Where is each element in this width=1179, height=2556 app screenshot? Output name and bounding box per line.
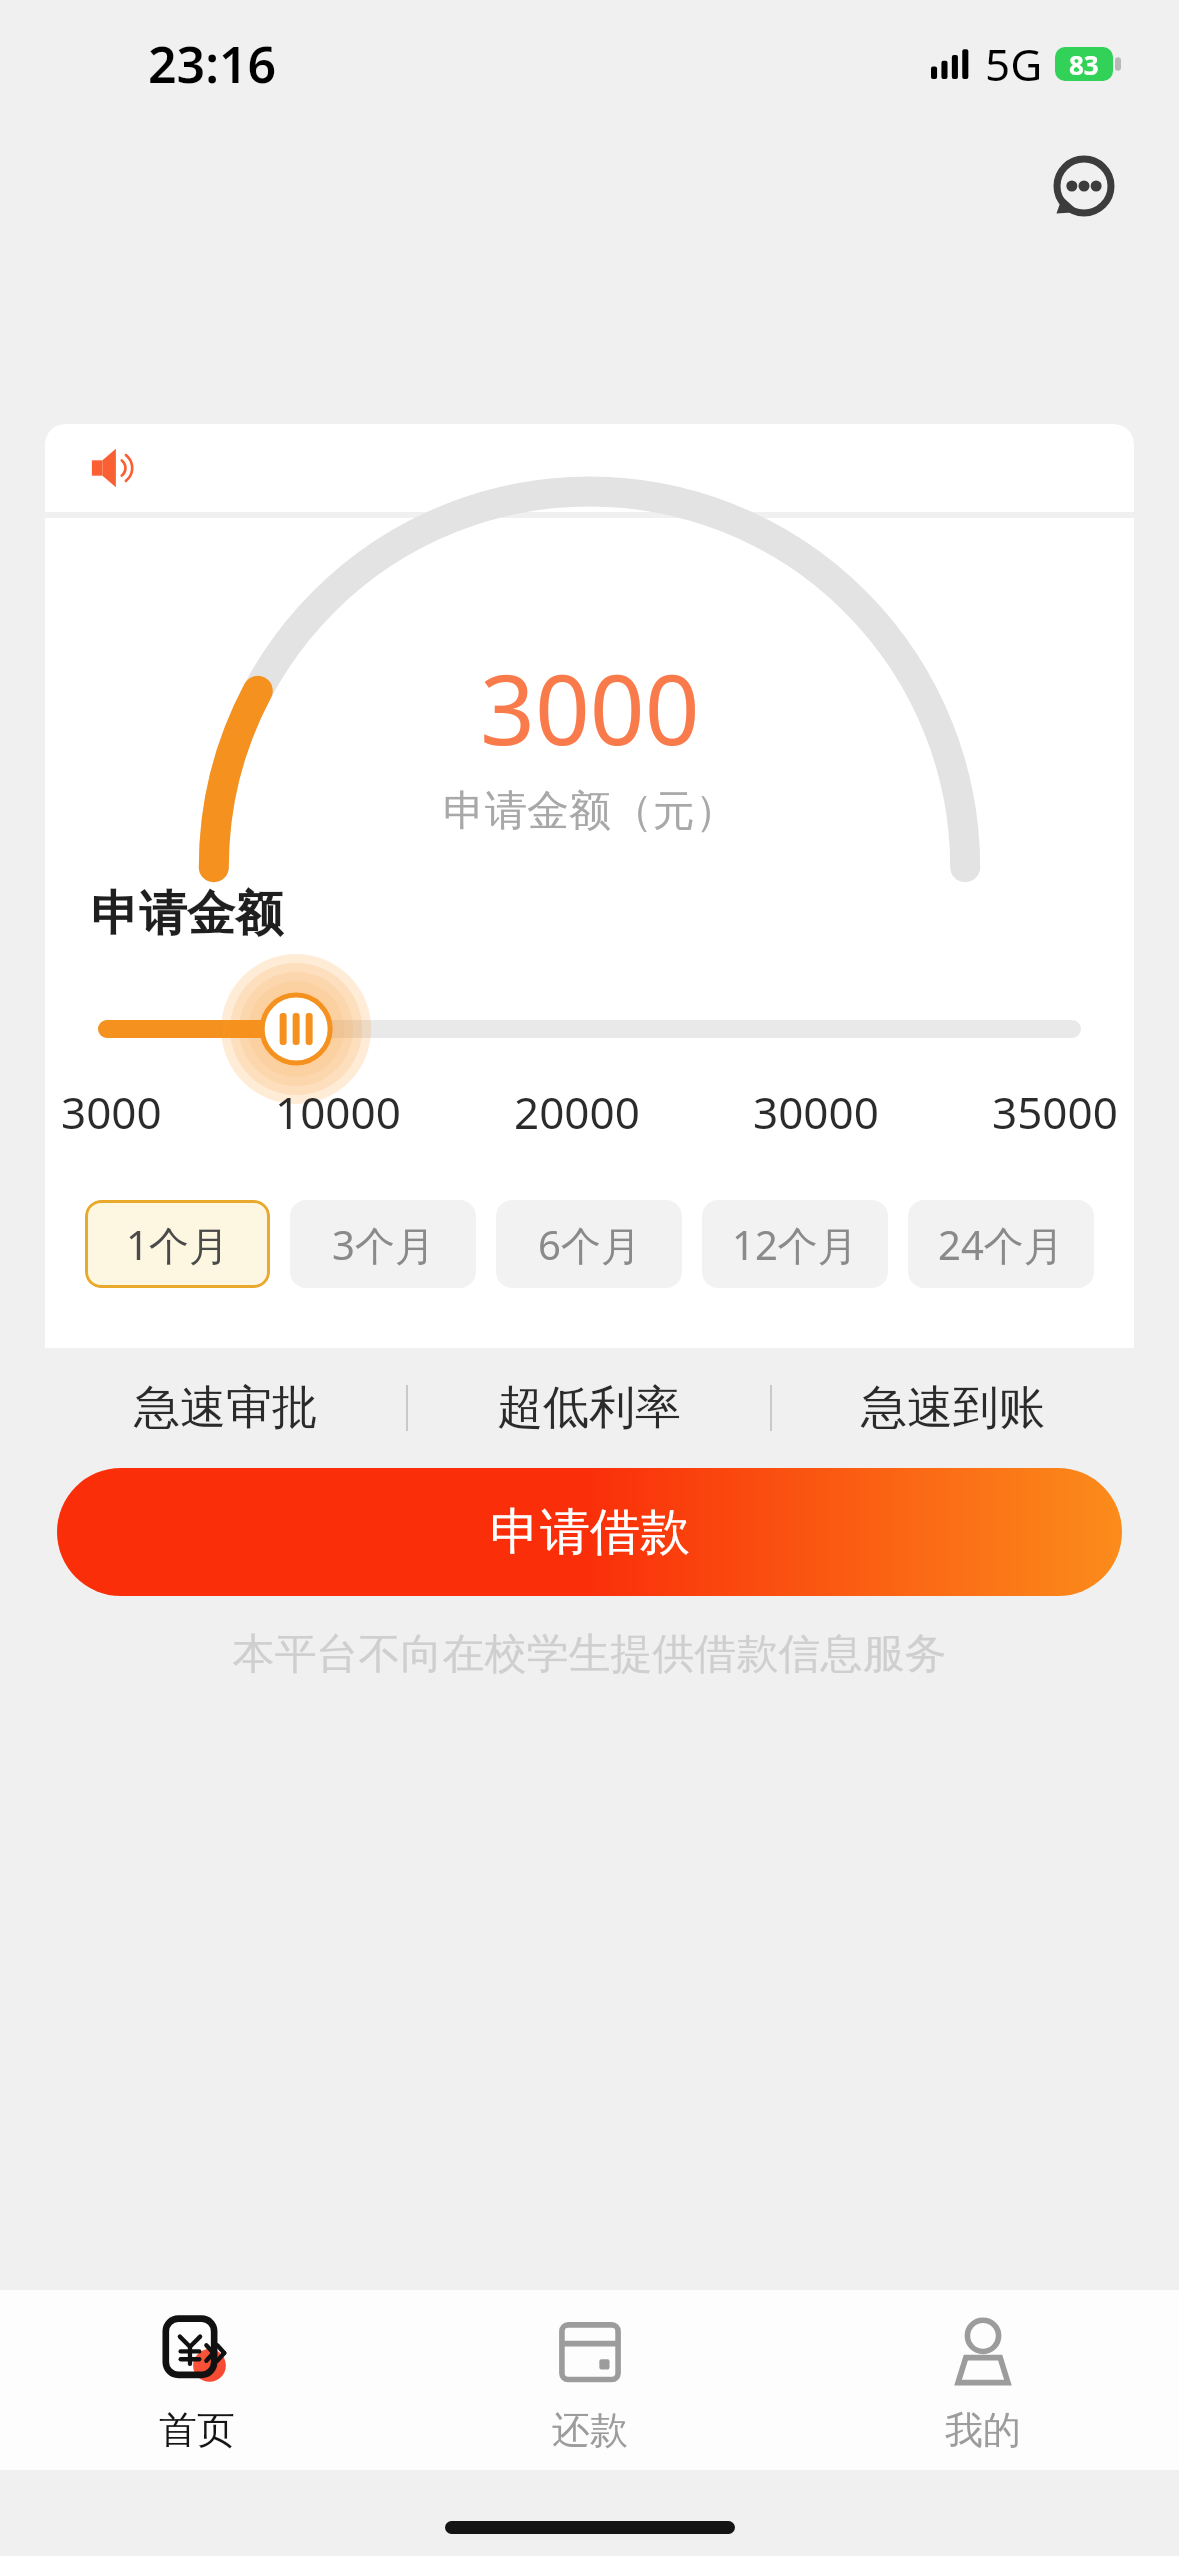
staticText: 申请金额（元） (443, 785, 737, 838)
staticText: 我的 (945, 2406, 1021, 2454)
button[interactable]: 首页 (0, 2290, 393, 2470)
staticText: 30000 (753, 1082, 879, 1142)
button[interactable]: 我的 (786, 2290, 1179, 2470)
staticText: 超低利率 (497, 1379, 681, 1437)
staticText: 本平台不向在校学生提供借款信息服务 (45, 1628, 1134, 1681)
staticText: 1个月 (126, 1217, 229, 1272)
button[interactable]: Customer service chat (1046, 148, 1122, 224)
staticText: 申请金额 (91, 884, 283, 944)
staticText: 5G (985, 34, 1043, 94)
staticText: 35000 (992, 1082, 1118, 1142)
staticText: 23:16 (148, 30, 277, 98)
staticText: 6个月 (538, 1217, 641, 1272)
staticText: 申请借款 (490, 1501, 690, 1564)
staticText: 10000 (275, 1082, 401, 1142)
staticText: 急速到账 (861, 1379, 1045, 1437)
staticText: 还款 (552, 2406, 628, 2454)
staticText: 20000 (514, 1082, 640, 1142)
button[interactable]: 12个月 (702, 1200, 888, 1288)
button[interactable]: 6个月 (496, 1200, 682, 1288)
staticText: 3000 (480, 642, 700, 773)
staticText: 24个月 (938, 1217, 1064, 1272)
staticText: 3个月 (332, 1217, 435, 1272)
staticText: 3000 (61, 1082, 162, 1142)
button[interactable]: 还款 (393, 2290, 786, 2470)
staticText: 83 (1069, 47, 1099, 81)
button[interactable]: 24个月 (908, 1200, 1094, 1288)
button[interactable]: Announcement (45, 424, 1134, 512)
button[interactable]: 1个月 (85, 1200, 270, 1288)
staticText: 首页 (159, 2406, 235, 2454)
staticText: 12个月 (732, 1217, 858, 1272)
button[interactable]: 3个月 (290, 1200, 476, 1288)
staticText: 急速审批 (134, 1379, 318, 1437)
button[interactable]: 申请借款 (57, 1468, 1122, 1596)
